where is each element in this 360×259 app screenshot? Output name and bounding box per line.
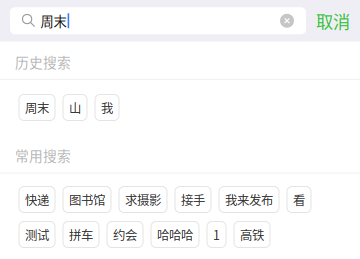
button[interactable]: 图书馆 <box>63 186 111 212</box>
button[interactable]: 接手 <box>175 186 211 212</box>
staticText: 我 <box>101 98 113 116</box>
button[interactable]: 山 <box>63 94 87 120</box>
button[interactable]: 测试 <box>19 221 55 247</box>
staticText: 拼车 <box>69 225 93 243</box>
staticText: 周末 <box>41 11 67 30</box>
button[interactable]: 哈哈哈 <box>151 221 199 247</box>
button[interactable]: 拼车 <box>63 221 99 247</box>
button[interactable]: 高铁 <box>234 221 270 247</box>
button[interactable]: 我 <box>95 94 119 120</box>
staticText: 求摄影 <box>125 190 161 208</box>
staticText: 哈哈哈 <box>157 225 193 243</box>
staticText: 看 <box>293 190 305 208</box>
button[interactable]: 约会 <box>107 221 143 247</box>
button[interactable]: 求摄影 <box>119 186 167 212</box>
button[interactable]: 1 <box>207 221 226 247</box>
staticText: 约会 <box>113 225 137 243</box>
button[interactable]: 看 <box>287 186 311 212</box>
staticText: 接手 <box>181 190 205 208</box>
staticText: 1 <box>213 225 220 243</box>
button[interactable]: 我来发布 <box>219 186 279 212</box>
staticText: 高铁 <box>240 225 264 243</box>
button[interactable]: 快递 <box>19 186 55 212</box>
staticText: 我来发布 <box>225 190 273 208</box>
staticText: 图书馆 <box>69 190 105 208</box>
button[interactable]: 周末 <box>19 94 55 120</box>
button[interactable]: 取消 <box>306 0 360 41</box>
staticText: 历史搜索 <box>15 52 71 72</box>
staticText: 周末 <box>25 98 49 116</box>
staticText: 常用搜索 <box>15 145 71 165</box>
staticText: 取消 <box>316 8 350 33</box>
staticText: 快递 <box>25 190 49 208</box>
staticText: 山 <box>69 98 81 116</box>
staticText: 测试 <box>25 225 49 243</box>
